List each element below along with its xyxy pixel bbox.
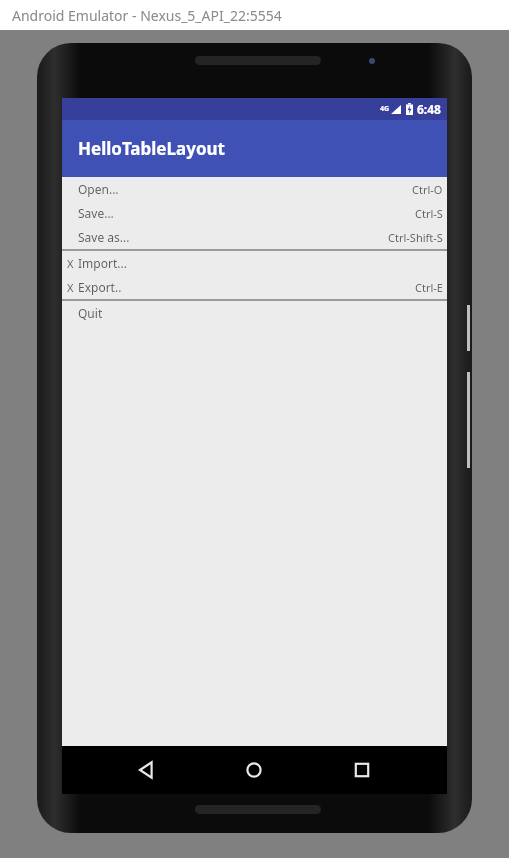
button[interactable]: Save as... [62, 225, 447, 249]
staticText: Save... [78, 205, 114, 221]
staticText: Ctrl-Shift-S [388, 230, 443, 245]
staticText: Quit [78, 305, 103, 321]
staticText: Open... [78, 181, 119, 197]
staticText: Ctrl-O [412, 182, 443, 197]
button[interactable]: X [62, 275, 447, 299]
staticText: 4G [380, 104, 390, 114]
staticText: Ctrl-E [415, 280, 443, 295]
button[interactable]: Quit [62, 301, 447, 325]
button[interactable]: Save... [62, 201, 447, 225]
staticText: X [67, 256, 74, 271]
staticText: X [67, 280, 74, 295]
button[interactable]: X [62, 251, 447, 275]
button[interactable]: Back [136, 760, 156, 780]
staticText: Import... [78, 255, 127, 271]
button[interactable]: Home [244, 760, 264, 780]
staticText: HelloTableLayout [78, 137, 225, 160]
staticText: Export.. [78, 279, 122, 295]
staticText: Ctrl-S [415, 206, 443, 221]
staticText: 6:48 [417, 101, 441, 117]
button[interactable]: Recent apps [352, 760, 372, 780]
staticText: Save as... [78, 229, 130, 245]
button[interactable]: Open... [62, 177, 447, 201]
staticText: Android Emulator - Nexus_5_API_22:5554 [12, 6, 282, 25]
